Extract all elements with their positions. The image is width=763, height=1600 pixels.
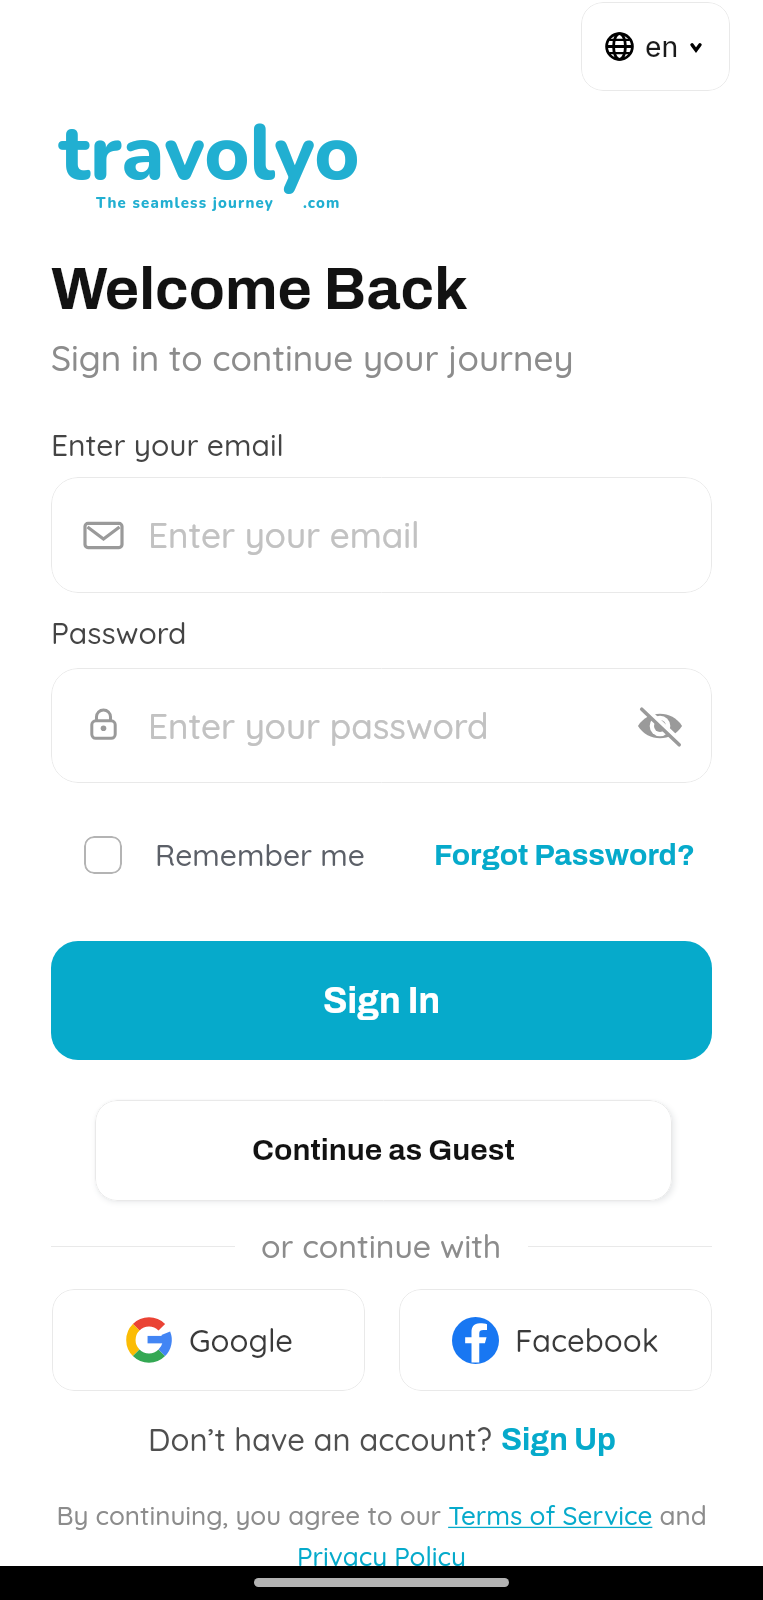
staticText: Sign in to continue your journey bbox=[51, 336, 574, 380]
staticText: Enter your password bbox=[148, 704, 634, 748]
staticText: Enter your email bbox=[51, 426, 284, 464]
staticText: Welcome Back bbox=[51, 257, 468, 321]
staticText: Enter your email bbox=[148, 513, 420, 557]
staticText: Password bbox=[51, 614, 187, 652]
button[interactable]: Sign Up bbox=[501, 1423, 616, 1457]
staticText: travolyo bbox=[59, 101, 360, 206]
button[interactable]: Remember me bbox=[84, 836, 366, 874]
button[interactable]: Sign In bbox=[51, 941, 712, 1060]
button[interactable]: Google bbox=[52, 1289, 365, 1391]
staticText: Google bbox=[189, 1321, 293, 1360]
button[interactable]: Facebook bbox=[399, 1289, 712, 1391]
staticText: Facebook bbox=[515, 1321, 659, 1360]
staticText: By continuing, you agree to our Terms of… bbox=[26, 1499, 737, 1572]
staticText: Sign In bbox=[323, 981, 441, 1020]
button[interactable]: Forgot Password? bbox=[434, 839, 696, 872]
staticText: or continue with bbox=[261, 1226, 502, 1266]
staticText: Remember me bbox=[155, 836, 366, 874]
staticText: Don’t have an account? bbox=[148, 1420, 501, 1459]
staticText: The seamless journey bbox=[96, 193, 275, 213]
button[interactable]: Enter your password bbox=[51, 668, 712, 783]
staticText: en bbox=[645, 30, 679, 64]
button[interactable]: Enter your email bbox=[51, 477, 712, 593]
button[interactable]: Show password bbox=[634, 700, 686, 752]
button[interactable]: Continue as Guest bbox=[95, 1100, 672, 1201]
staticText: .com bbox=[303, 193, 341, 213]
staticText: Continue as Guest bbox=[252, 1134, 515, 1167]
button[interactable]: en bbox=[581, 2, 730, 91]
